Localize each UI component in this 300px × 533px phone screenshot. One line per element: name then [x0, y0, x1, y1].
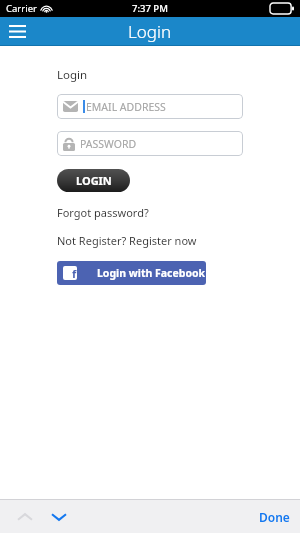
- button[interactable]: EMAIL ADDRESS: [57, 94, 243, 119]
- staticText: Not Register? Register now: [57, 233, 197, 248]
- staticText: Carrier: [6, 2, 37, 15]
- button[interactable]: Open navigation menu: [0, 17, 34, 46]
- staticText: Login with Facebook: [97, 266, 206, 280]
- staticText: PASSWORD: [80, 137, 137, 151]
- staticText: Forgot password?: [57, 205, 149, 220]
- staticText: Login: [128, 20, 172, 43]
- button[interactable]: Previous field: [12, 504, 38, 530]
- button[interactable]: Done: [249, 505, 300, 529]
- button[interactable]: f: [57, 261, 206, 285]
- staticText: 7:37 PM: [132, 2, 168, 15]
- button[interactable]: Not Register? Register now: [57, 233, 197, 248]
- staticText: Login: [57, 67, 88, 83]
- staticText: f: [72, 266, 77, 280]
- button[interactable]: Forgot password?: [57, 205, 149, 220]
- staticText: Done: [259, 509, 290, 525]
- button[interactable]: LOGIN: [57, 169, 130, 192]
- staticText: LOGIN: [76, 173, 112, 188]
- button[interactable]: Next field: [46, 504, 72, 530]
- button[interactable]: PASSWORD: [57, 131, 243, 156]
- staticText: EMAIL ADDRESS: [86, 100, 166, 114]
